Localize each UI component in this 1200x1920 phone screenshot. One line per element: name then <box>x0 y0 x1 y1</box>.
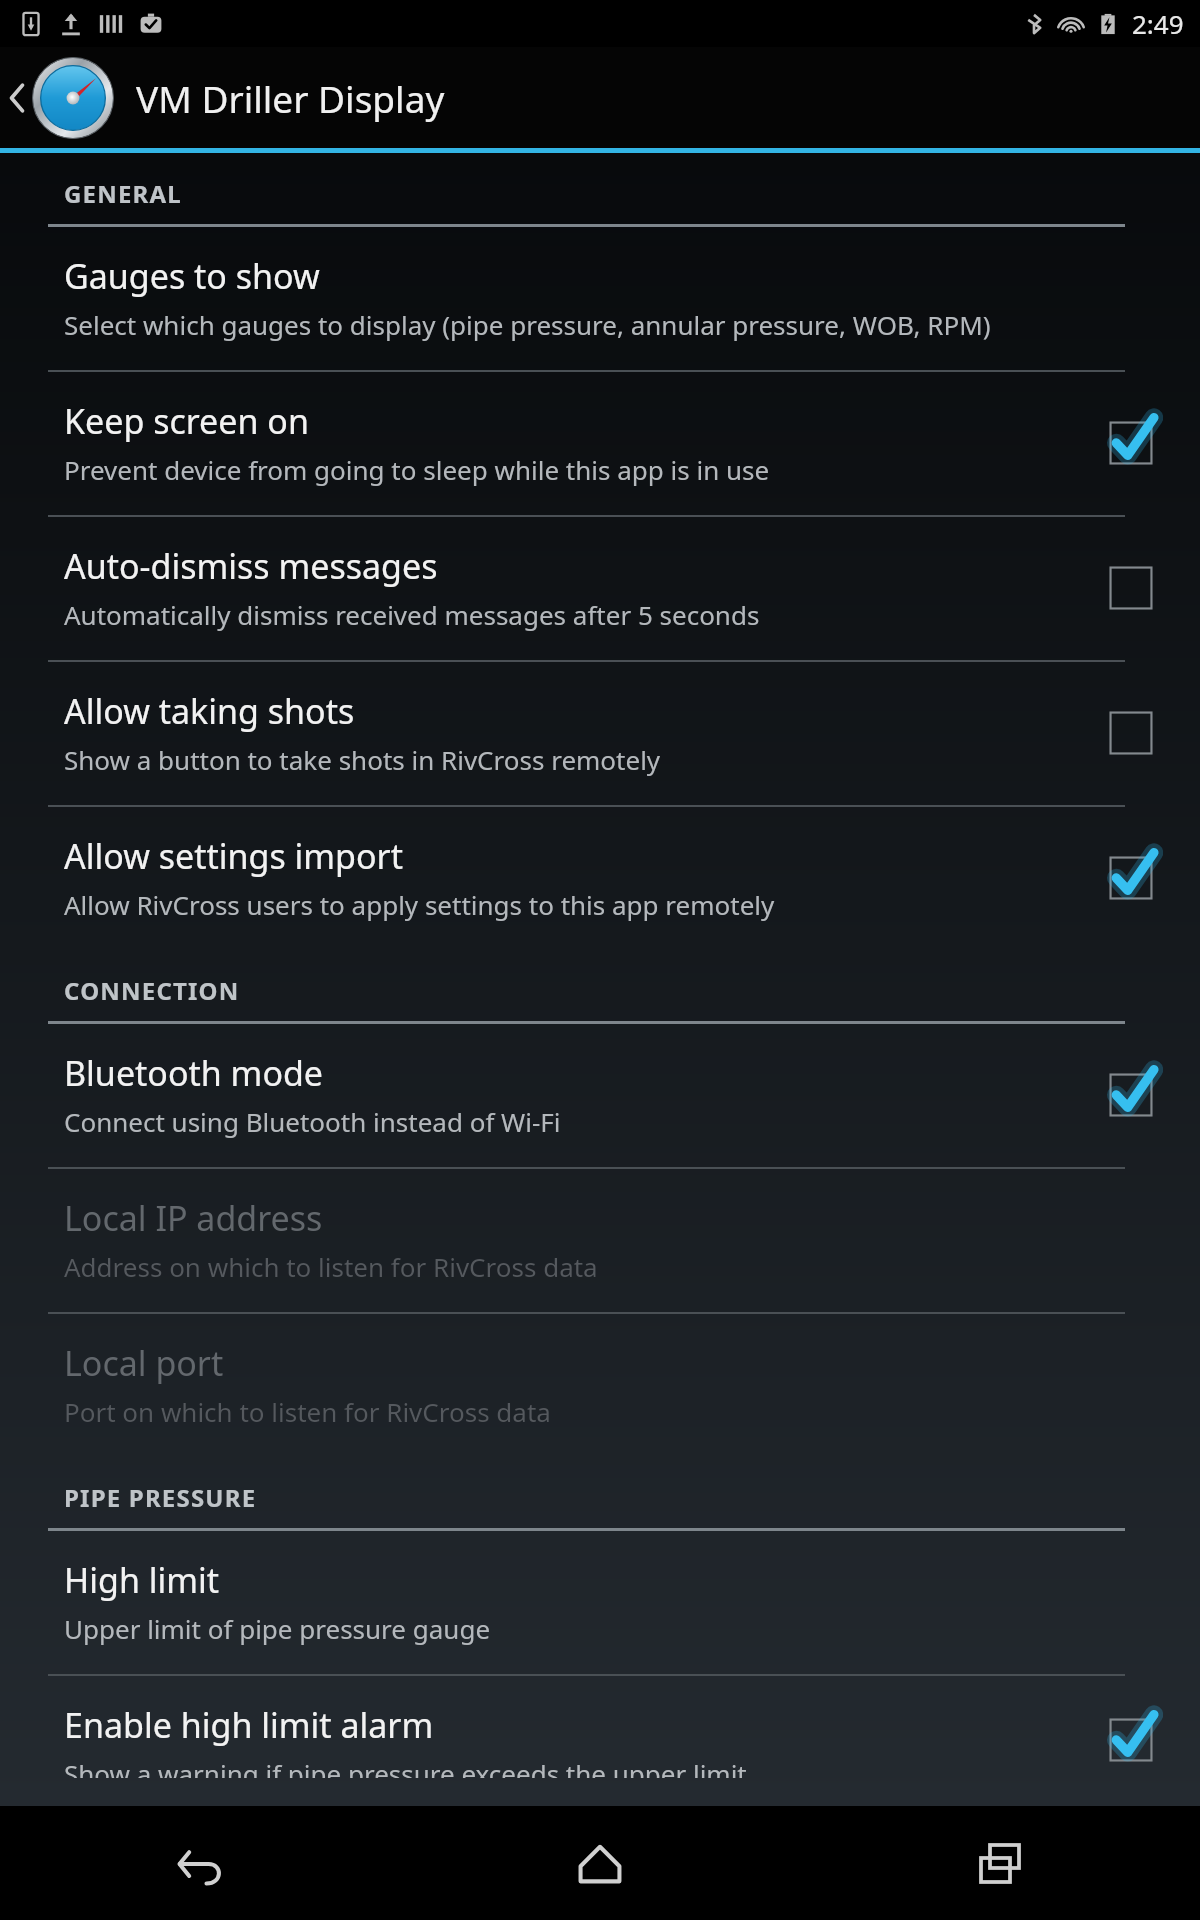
button[interactable]: Keep screen on <box>0 372 1200 515</box>
staticText: GENERAL <box>64 177 182 210</box>
button[interactable]: Gauges to show <box>0 227 1200 370</box>
button[interactable]: Local IP address <box>0 1169 1200 1312</box>
staticText: High limit <box>64 1557 220 1603</box>
button[interactable]: Home <box>545 1808 655 1918</box>
button[interactable]: Enable high limit alarm <box>0 1676 1200 1806</box>
staticText: Keep screen on <box>64 398 309 444</box>
staticText: Select which gauges to display (pipe pre… <box>64 307 991 342</box>
button[interactable]: Unchecked <box>1092 549 1170 627</box>
staticText: Show a button to take shots in RivCross … <box>64 742 661 777</box>
button[interactable]: Local port <box>0 1314 1200 1457</box>
staticText: 2:49 <box>1132 6 1184 41</box>
staticText: Automatically dismiss received messages … <box>64 597 760 632</box>
staticText: Bluetooth mode <box>64 1050 324 1096</box>
staticText: VM Driller Display <box>136 73 445 123</box>
staticText: Address on which to listen for RivCross … <box>64 1249 598 1284</box>
button[interactable]: Checked <box>1092 1056 1170 1134</box>
staticText: Gauges to show <box>64 253 320 299</box>
staticText: Allow taking shots <box>64 688 355 734</box>
staticText: Allow settings import <box>64 833 403 879</box>
staticText: Show a warning if pipe pressure exceeds … <box>64 1756 747 1778</box>
button[interactable]: Navigate up <box>0 49 120 147</box>
staticText: Local IP address <box>64 1195 323 1241</box>
staticText: Connect using Bluetooth instead of Wi-Fi <box>64 1104 561 1139</box>
button[interactable]: Unchecked <box>1092 694 1170 772</box>
button[interactable]: Checked <box>1092 404 1170 482</box>
staticText: CONNECTION <box>64 974 240 1007</box>
staticText: Enable high limit alarm <box>64 1702 434 1748</box>
button[interactable]: Bluetooth mode <box>0 1024 1200 1167</box>
staticText: Local port <box>64 1340 224 1386</box>
staticText: Allow RivCross users to apply settings t… <box>64 887 775 922</box>
button[interactable]: Recent apps <box>945 1808 1055 1918</box>
staticText: Prevent device from going to sleep while… <box>64 452 770 487</box>
button[interactable]: Allow settings import <box>0 807 1200 950</box>
button[interactable]: Checked <box>1092 1702 1170 1778</box>
button[interactable]: Back <box>145 1808 255 1918</box>
button[interactable]: Allow taking shots <box>0 662 1200 805</box>
button[interactable]: High limit <box>0 1531 1200 1674</box>
staticText: Upper limit of pipe pressure gauge <box>64 1611 491 1646</box>
button[interactable]: Auto-dismiss messages <box>0 517 1200 660</box>
staticText: Auto-dismiss messages <box>64 543 438 589</box>
staticText: Port on which to listen for RivCross dat… <box>64 1394 551 1429</box>
button[interactable]: Checked <box>1092 839 1170 917</box>
staticText: PIPE PRESSURE <box>64 1481 257 1514</box>
